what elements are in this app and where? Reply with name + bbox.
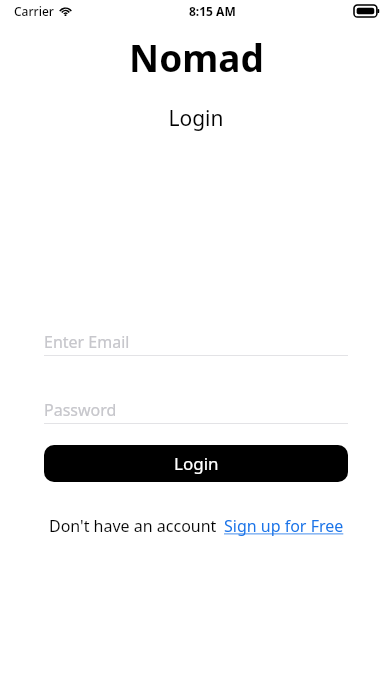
staticText: Nomad xyxy=(129,32,264,82)
staticText: Enter Email xyxy=(44,331,130,353)
staticText: Password xyxy=(44,399,117,421)
button[interactable]: Password xyxy=(44,397,348,424)
staticText: Sign up for Free xyxy=(224,515,344,537)
button[interactable]: Login xyxy=(44,445,348,482)
staticText: Login xyxy=(168,104,224,133)
staticText: Carrier xyxy=(14,3,54,19)
button[interactable]: Enter Email xyxy=(44,329,348,356)
button[interactable]: Sign up for Free xyxy=(224,515,344,537)
staticText: Login xyxy=(174,452,219,475)
staticText: Don't have an account xyxy=(49,515,217,537)
staticText: 8:15 AM xyxy=(189,3,236,19)
